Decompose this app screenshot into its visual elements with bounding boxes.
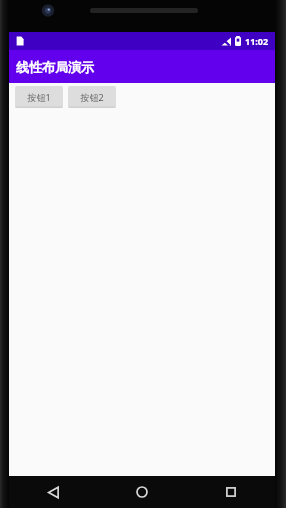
button[interactable]: Back [36, 476, 70, 508]
button[interactable]: Recent apps [214, 476, 248, 508]
staticText: 按钮1 [27, 91, 51, 103]
button[interactable]: 按钮2 [68, 86, 116, 108]
button[interactable]: 按钮1 [15, 86, 63, 108]
staticText: 线性布局演示 [16, 59, 94, 75]
staticText: 11:02 [245, 35, 269, 47]
staticText: 按钮2 [80, 91, 104, 103]
button[interactable]: Home [125, 476, 159, 508]
